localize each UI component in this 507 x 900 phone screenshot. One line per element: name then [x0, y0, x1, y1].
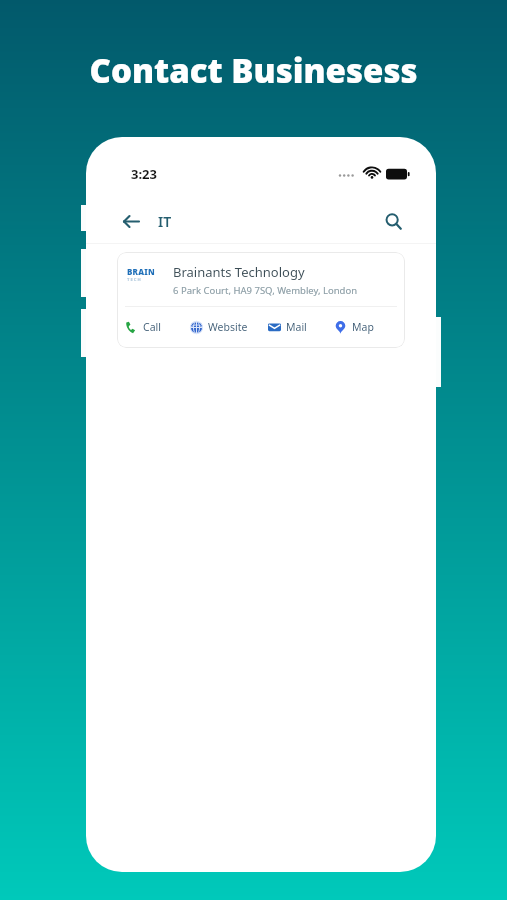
staticText: IT — [158, 212, 172, 231]
button[interactable]: Mail — [268, 307, 334, 347]
button[interactable]: Back — [116, 206, 146, 236]
button[interactable]: Website — [190, 307, 268, 347]
staticText: 6 Park Court, HA9 7SQ, Wembley, London — [173, 284, 358, 297]
button[interactable]: Search — [377, 205, 409, 237]
staticText: BRAIN — [127, 266, 155, 277]
staticText: Contact Businesess — [89, 48, 418, 93]
button[interactable]: Call — [125, 307, 190, 347]
button[interactable]: Map — [334, 307, 395, 347]
staticText: Website — [208, 320, 248, 334]
staticText: Mail — [286, 320, 307, 334]
staticText: Map — [352, 320, 374, 334]
staticText: T E C H — [127, 277, 141, 283]
staticText: Call — [143, 320, 161, 334]
button[interactable]: BRAIN — [117, 252, 405, 348]
staticText: 3:23 — [131, 165, 157, 183]
staticText: Brainants Technology — [173, 263, 305, 281]
